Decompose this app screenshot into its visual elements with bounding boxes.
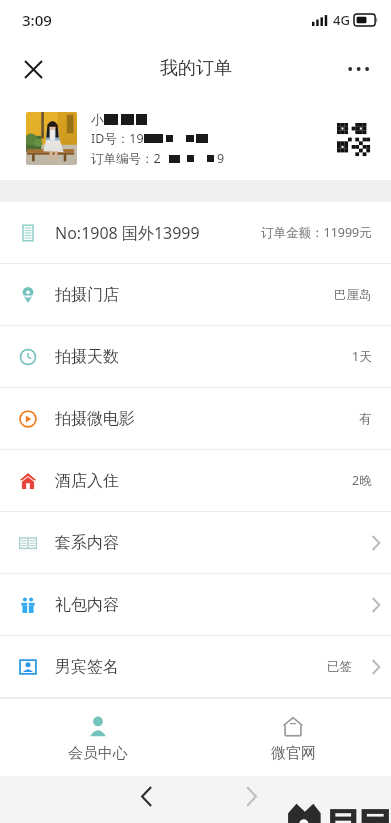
staticText: 订单编号：2: [91, 150, 161, 167]
staticText: 拍摄微电影: [55, 409, 359, 429]
button[interactable]: 男宾签名: [0, 636, 391, 697]
button[interactable]: 拍摄天数: [0, 326, 391, 387]
staticText: 男宾签名: [55, 657, 327, 677]
button[interactable]: 拍摄门店: [0, 264, 391, 325]
staticText: 已签: [327, 659, 352, 675]
staticText: 小: [91, 111, 104, 127]
staticText: 3:09: [22, 10, 52, 30]
staticText: 微官网: [271, 744, 316, 763]
button[interactable]: No:1908 国外13999: [0, 202, 391, 263]
staticText: 有: [359, 411, 372, 427]
staticText: No:1908 国外13999: [55, 222, 261, 244]
button[interactable]: 拍摄微电影: [0, 388, 391, 449]
button[interactable]: Forward: [231, 776, 271, 816]
button[interactable]: 会员中心: [0, 712, 195, 763]
staticText: 礼包内容: [55, 595, 360, 615]
button[interactable]: Back: [126, 776, 166, 816]
staticText: ID号：19: [91, 130, 144, 147]
staticText: 4G: [333, 11, 350, 29]
button[interactable]: 套系内容: [0, 512, 391, 573]
button[interactable]: QR code: [335, 121, 371, 157]
staticText: 拍摄门店: [55, 285, 334, 305]
staticText: 会员中心: [68, 744, 128, 763]
button[interactable]: 礼包内容: [0, 574, 391, 635]
staticText: 拍摄天数: [55, 347, 352, 367]
staticText: 套系内容: [55, 533, 360, 553]
staticText: 巴厘岛: [334, 287, 372, 303]
staticText: 酒店入住: [55, 471, 352, 491]
staticText: 我的订单: [160, 57, 232, 80]
staticText: 2晚: [352, 472, 372, 489]
staticText: 9: [217, 150, 225, 167]
staticText: 订单金额：11999元: [261, 224, 372, 241]
button[interactable]: Close: [12, 48, 54, 90]
button[interactable]: 微官网: [195, 712, 391, 763]
staticText: 1天: [352, 348, 372, 365]
button[interactable]: 酒店入住: [0, 450, 391, 511]
button[interactable]: More options: [337, 47, 381, 91]
